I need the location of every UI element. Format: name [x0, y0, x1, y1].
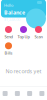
button[interactable]: Stats	[23, 87, 36, 100]
staticText: Bills	[4, 50, 12, 56]
staticText: Scan	[34, 34, 42, 39]
button[interactable]: Send	[1, 26, 16, 39]
button[interactable]: Profile	[36, 87, 47, 100]
button[interactable]: Cards	[11, 87, 23, 100]
button[interactable]: Top Up	[16, 26, 31, 39]
button[interactable]: Home	[0, 87, 11, 100]
staticText: No records yet	[5, 68, 41, 75]
staticText: Balance	[4, 9, 25, 16]
staticText: Hello	[4, 2, 13, 8]
staticText: 9:41	[2, 0, 9, 5]
staticText: Top Up	[17, 34, 29, 39]
button[interactable]: Bills	[1, 42, 16, 56]
button[interactable]: Scan	[31, 26, 46, 39]
staticText: Send	[4, 34, 12, 39]
staticText: $1,248.00	[4, 17, 20, 22]
